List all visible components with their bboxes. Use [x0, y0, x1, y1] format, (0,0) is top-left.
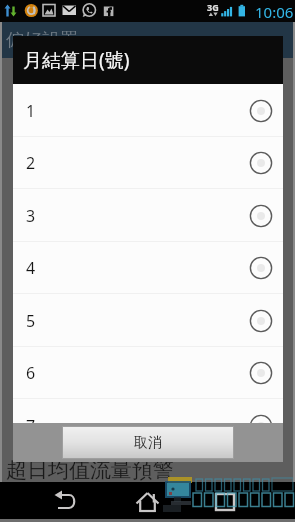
- button[interactable]: 7: [13, 399, 283, 423]
- staticText: 6: [26, 362, 36, 384]
- staticText: 1: [26, 100, 36, 122]
- button[interactable]: 2: [13, 136, 283, 189]
- staticText: 2: [26, 152, 36, 174]
- button[interactable]: 1: [13, 84, 283, 137]
- staticText: 3G: [207, 1, 219, 13]
- button[interactable]: 取消: [63, 427, 233, 458]
- button[interactable]: Home: [125, 486, 171, 518]
- staticText: 月結算日(號): [23, 47, 130, 73]
- button[interactable]: 4: [13, 241, 283, 294]
- staticText: 5: [26, 310, 36, 332]
- staticText: 取消: [134, 434, 162, 452]
- staticText: 偏好設置: [6, 29, 78, 52]
- staticText: 4: [26, 257, 36, 279]
- button[interactable]: 5: [13, 294, 283, 347]
- staticText: 3: [26, 205, 36, 227]
- staticText: 超日均值流量預警: [6, 457, 174, 483]
- button[interactable]: Recent apps: [202, 486, 248, 518]
- button[interactable]: 6: [13, 346, 283, 399]
- staticText: 7: [26, 415, 36, 423]
- button[interactable]: Back: [44, 486, 90, 518]
- button[interactable]: 3: [13, 189, 283, 242]
- staticText: 10:06: [255, 2, 294, 22]
